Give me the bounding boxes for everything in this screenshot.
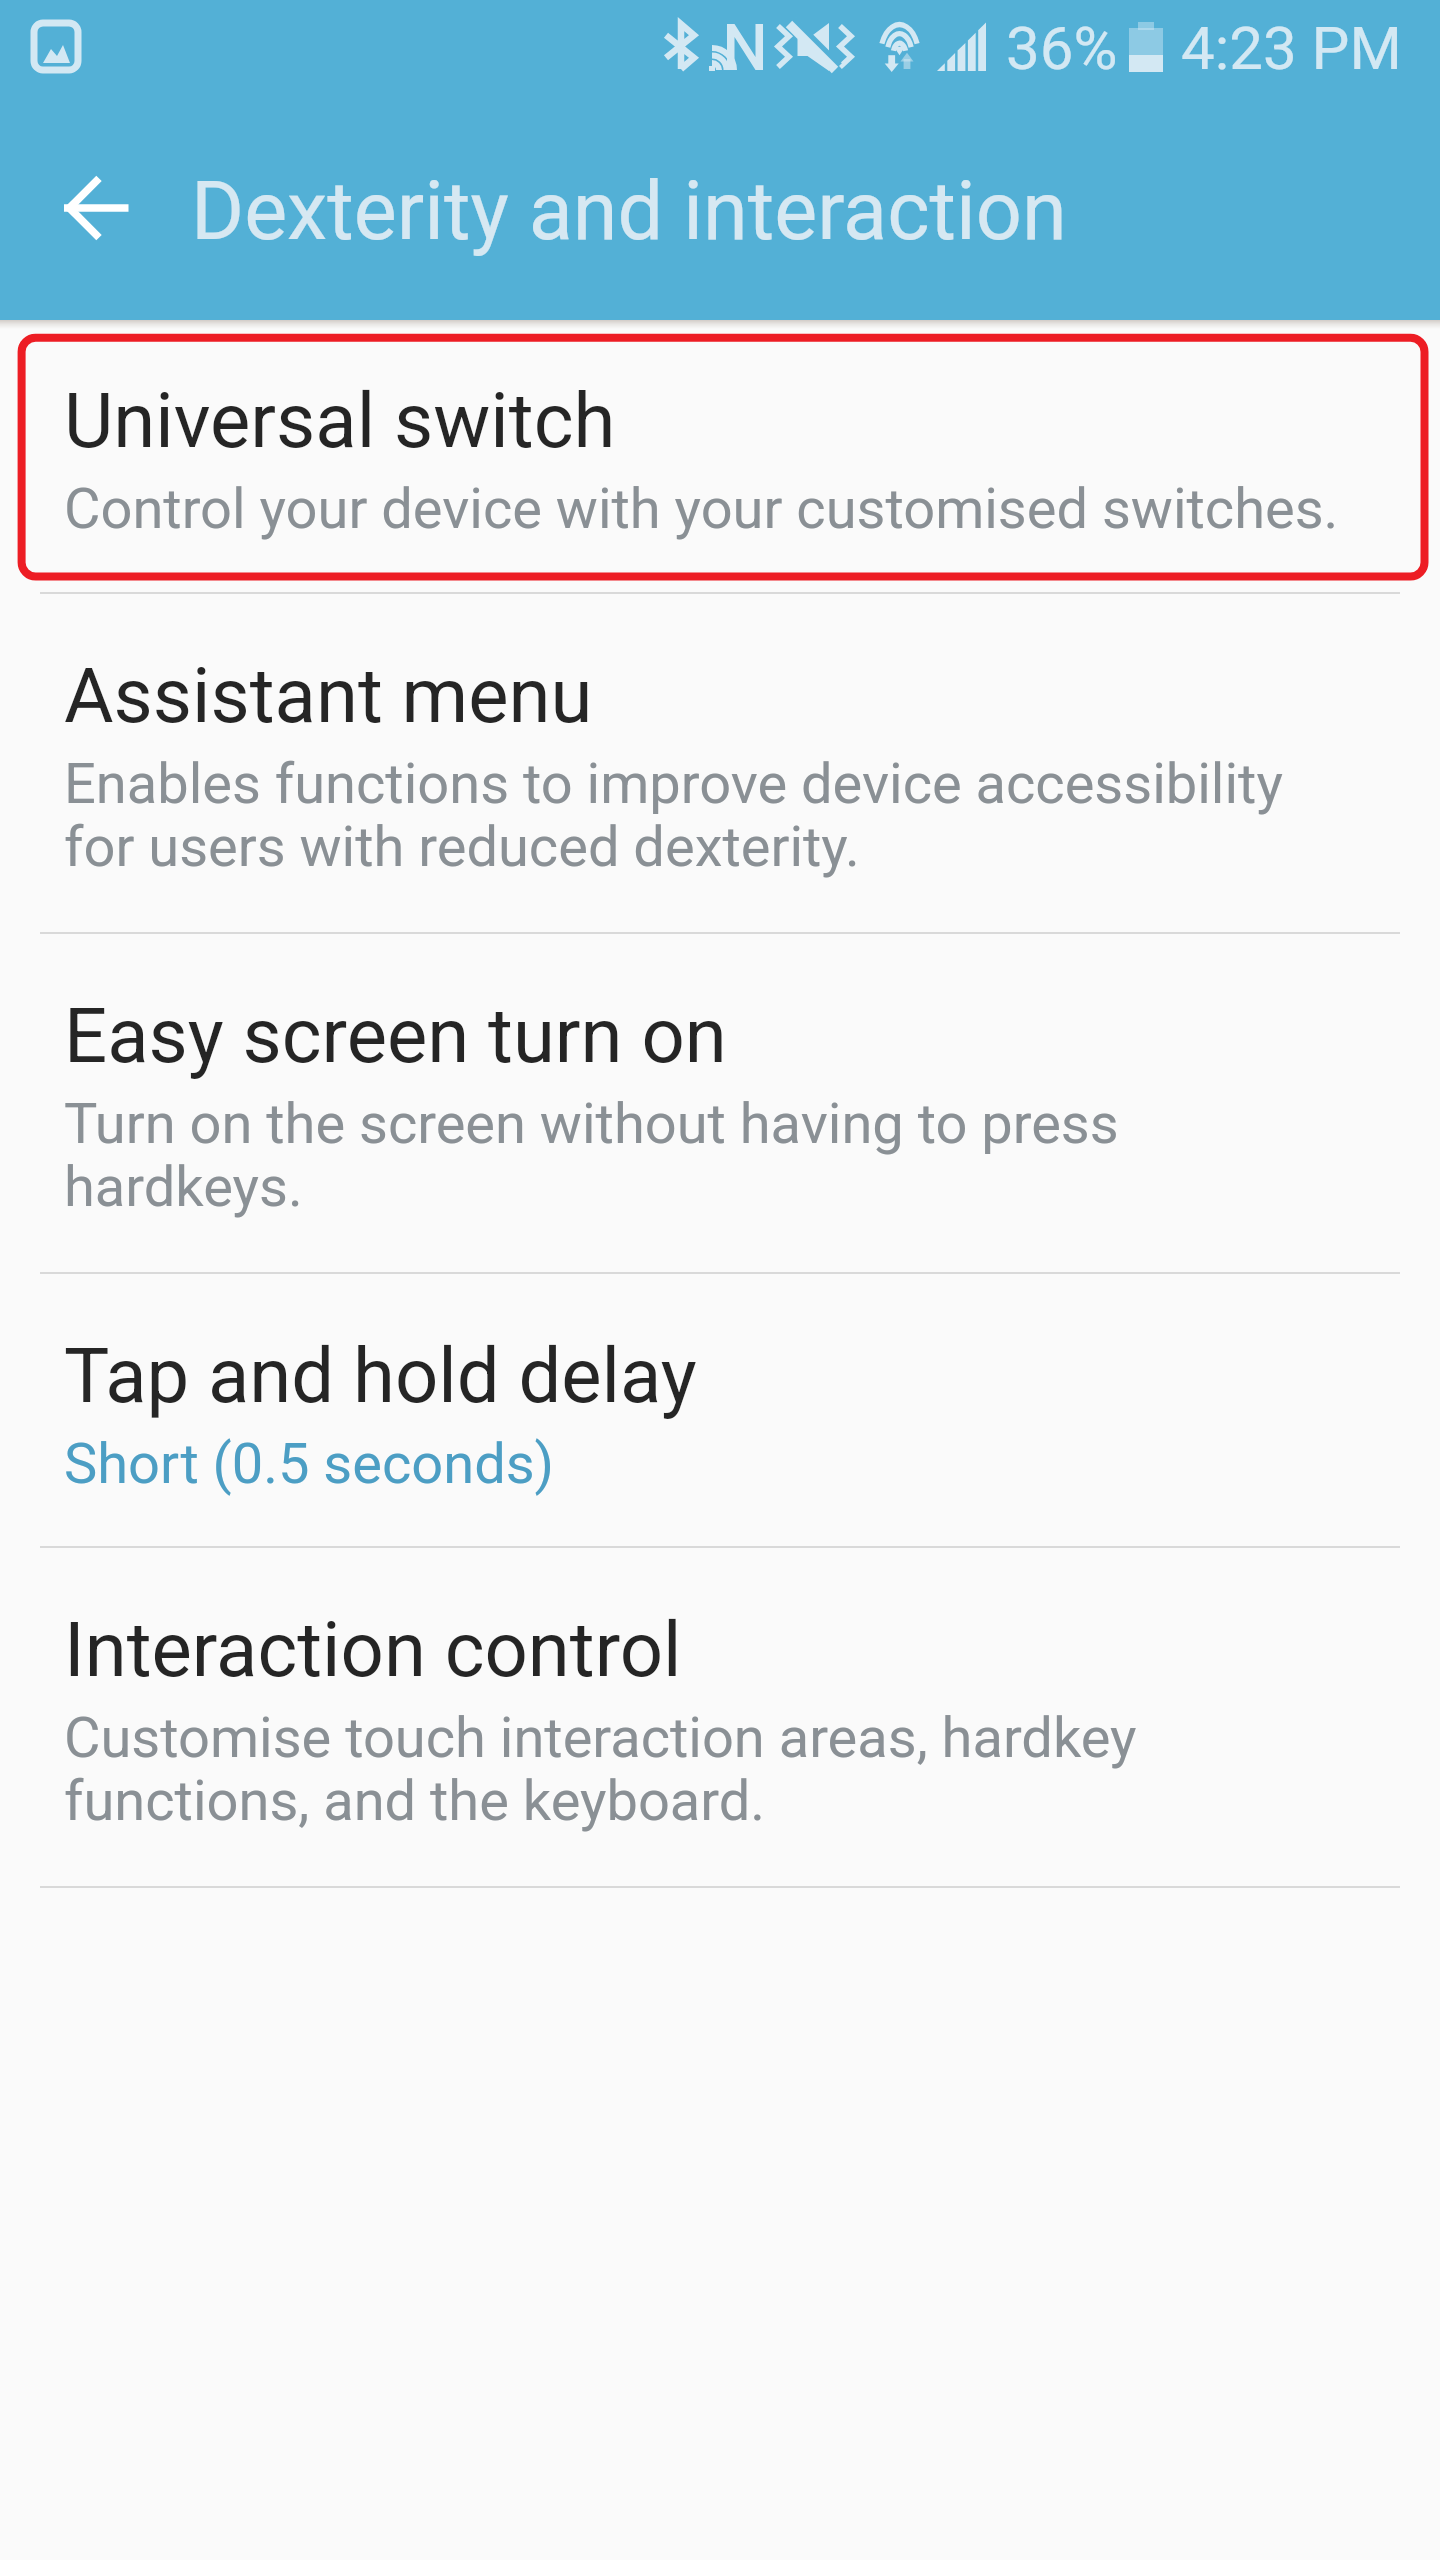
button[interactable]: Assistant menu bbox=[0, 595, 1440, 932]
staticText: Universal switch bbox=[64, 376, 616, 465]
staticText: Turn on the screen without having to pre… bbox=[64, 1091, 1119, 1220]
button[interactable]: Universal switch bbox=[0, 320, 1440, 592]
staticText: Tap and hold delay bbox=[64, 1331, 697, 1420]
button[interactable]: Tap and hold delay bbox=[0, 1275, 1440, 1546]
button[interactable]: Navigate up bbox=[32, 152, 144, 264]
staticText: Easy screen turn on bbox=[64, 991, 727, 1080]
button[interactable]: Easy screen turn on bbox=[0, 935, 1440, 1272]
staticText: Dexterity and interaction bbox=[191, 164, 1067, 259]
staticText: Customise touch interaction areas, hardk… bbox=[64, 1705, 1137, 1834]
staticText: Enables functions to improve device acce… bbox=[64, 751, 1283, 880]
staticText: Assistant menu bbox=[64, 651, 593, 740]
staticText: Interaction control bbox=[64, 1605, 682, 1694]
staticText: 36% bbox=[1006, 13, 1118, 83]
staticText: Short (0.5 seconds) bbox=[64, 1431, 555, 1497]
staticText: Control your device with your customised… bbox=[64, 476, 1339, 542]
button[interactable]: Interaction control bbox=[0, 1549, 1440, 1886]
staticText: 4:23 PM bbox=[1181, 13, 1402, 83]
